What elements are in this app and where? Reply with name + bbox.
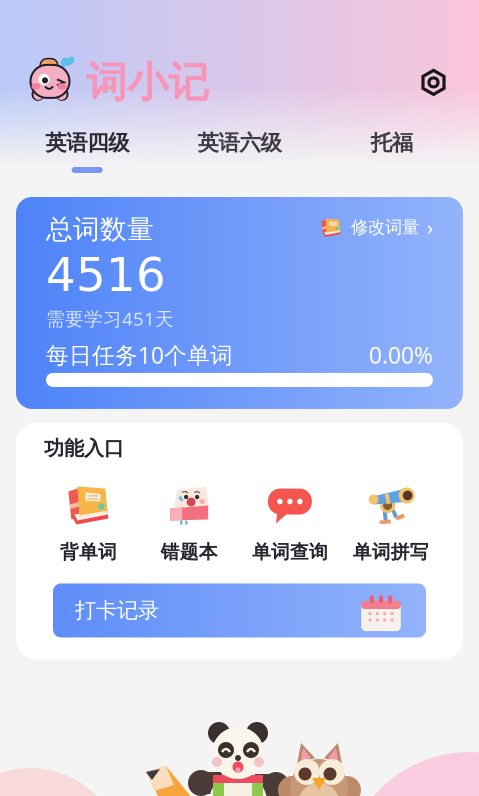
staticText: 总词数量 <box>46 213 154 246</box>
staticText: 功能入口 <box>44 436 124 460</box>
button[interactable]: 单词查询 <box>239 477 340 565</box>
staticText: 修改词量 <box>351 217 419 238</box>
staticText: 4516 <box>46 248 166 302</box>
button[interactable]: 背单词 <box>38 477 139 565</box>
staticText: 词小记 <box>86 57 209 108</box>
staticText: › <box>427 214 433 241</box>
button[interactable]: 托福 <box>316 130 468 173</box>
button[interactable]: 错题本 <box>139 477 240 565</box>
staticText: 需要学习451天 <box>46 306 174 331</box>
staticText: 单词查询 <box>252 540 328 563</box>
button[interactable]: Settings <box>416 64 451 100</box>
staticText: 英语六级 <box>197 130 281 156</box>
button[interactable]: 打卡记录 <box>53 583 426 637</box>
staticText: 背单词 <box>60 540 117 563</box>
staticText: 单词拼写 <box>353 540 429 563</box>
staticText: 英语四级 <box>45 130 129 156</box>
staticText: 打卡记录 <box>75 597 159 623</box>
button[interactable]: 英语四级 <box>11 130 163 173</box>
staticText: 错题本 <box>161 540 218 563</box>
staticText: 托福 <box>371 130 413 156</box>
button[interactable]: 单词拼写 <box>340 477 441 565</box>
button[interactable]: 修改词量 <box>319 214 433 245</box>
button[interactable]: 英语六级 <box>163 130 316 173</box>
staticText: 每日任务10个单词 <box>46 340 233 370</box>
staticText: 0.00% <box>369 340 433 370</box>
